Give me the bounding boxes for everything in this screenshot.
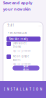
button[interactable]: Save skin [12, 65, 39, 70]
button[interactable]: New skin ready [6, 36, 40, 41]
staticText: Neon grape accent [12, 54, 29, 62]
staticText: your new skin [3, 6, 31, 12]
staticText: Save skin [23, 64, 29, 72]
staticText: Save and apply [3, 0, 32, 5]
button[interactable]: Neon grape accent [6, 56, 40, 63]
staticText: Dark violet theme [12, 41, 26, 49]
staticText: 9:41 [7, 24, 14, 27]
staticText: INSTALLATION [4, 88, 42, 91]
staticText: Tap to preview [12, 62, 30, 66]
staticText: PERSONALISE [7, 31, 26, 34]
button[interactable]: Dark violet theme [6, 43, 40, 50]
staticText: Tap to preview [12, 49, 30, 53]
staticText: New skin ready [8, 37, 27, 41]
button[interactable]: INSTALLATION [0, 81, 46, 98]
